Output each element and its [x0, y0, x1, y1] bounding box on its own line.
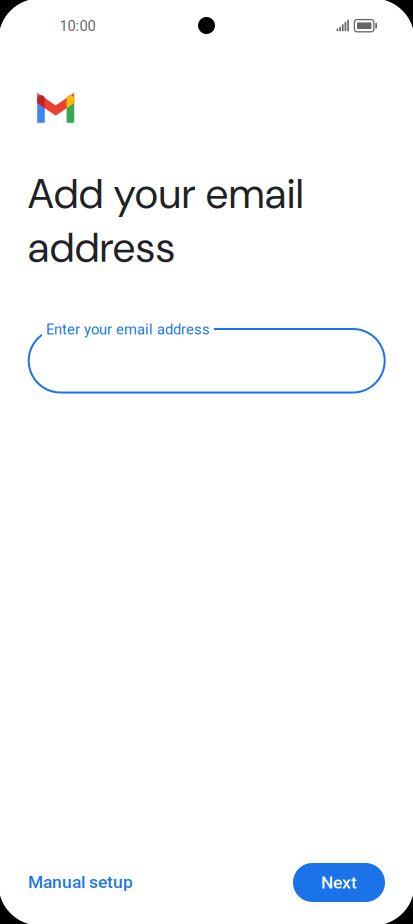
staticText: Manual setup	[28, 872, 133, 892]
button[interactable]: Next	[293, 863, 385, 902]
button[interactable]: Manual setup	[20, 864, 141, 900]
staticText: Add your email address	[27, 167, 303, 275]
staticText: 10:00	[59, 17, 95, 35]
staticText: Next	[321, 872, 357, 893]
staticText: Enter your email address	[46, 321, 210, 338]
